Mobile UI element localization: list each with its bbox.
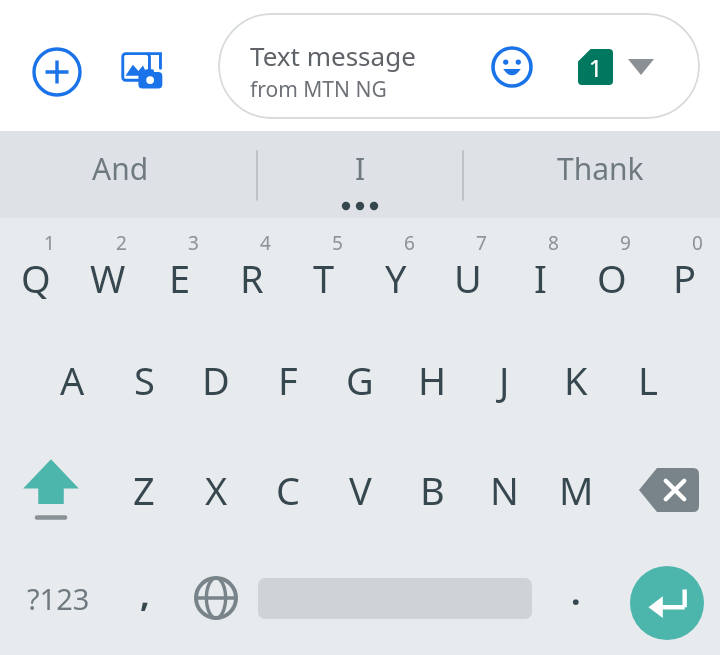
staticText: W bbox=[90, 252, 126, 304]
button[interactable]: Change language bbox=[182, 548, 250, 648]
staticText: K bbox=[564, 354, 588, 406]
staticText: 7 bbox=[476, 230, 487, 256]
button[interactable]: I bbox=[504, 218, 576, 322]
staticText: . bbox=[571, 569, 581, 615]
button[interactable]: C bbox=[252, 440, 324, 540]
button[interactable]: SIM 1 bbox=[570, 41, 670, 93]
button[interactable]: G bbox=[324, 330, 396, 430]
staticText: C bbox=[276, 464, 301, 516]
button[interactable]: O bbox=[576, 218, 648, 322]
button[interactable]: Thank bbox=[480, 131, 720, 218]
button[interactable]: Shift bbox=[8, 440, 94, 540]
staticText: V bbox=[349, 464, 372, 516]
staticText: J bbox=[499, 354, 510, 406]
staticText: Text message bbox=[250, 38, 416, 73]
staticText: O bbox=[597, 252, 627, 304]
button[interactable]: ?123 bbox=[6, 548, 110, 648]
button[interactable]: N bbox=[468, 440, 540, 540]
staticText: 4 bbox=[260, 230, 271, 256]
staticText: 1 bbox=[578, 51, 613, 84]
staticText: T bbox=[313, 252, 335, 304]
staticText: D bbox=[202, 354, 230, 406]
button[interactable]: A bbox=[36, 330, 108, 430]
staticText: N bbox=[490, 464, 519, 516]
staticText: And bbox=[92, 148, 149, 189]
staticText: , bbox=[140, 571, 150, 617]
staticText: 8 bbox=[548, 230, 559, 256]
staticText: U bbox=[454, 252, 482, 304]
button[interactable]: Backspace bbox=[626, 440, 712, 540]
staticText: R bbox=[240, 252, 264, 304]
staticText: I bbox=[355, 148, 366, 189]
button[interactable]: H bbox=[396, 330, 468, 430]
staticText: G bbox=[346, 354, 374, 406]
button[interactable]: D bbox=[180, 330, 252, 430]
button[interactable]: T bbox=[288, 218, 360, 322]
button[interactable]: S bbox=[108, 330, 180, 430]
staticText: F bbox=[278, 354, 298, 406]
button[interactable]: F bbox=[252, 330, 324, 430]
button[interactable]: V bbox=[324, 440, 396, 540]
button[interactable]: Insert emoji bbox=[490, 45, 534, 89]
button[interactable]: Y bbox=[360, 218, 432, 322]
staticText: from MTN NG bbox=[250, 75, 387, 104]
button[interactable]: E bbox=[144, 218, 216, 322]
staticText: 1 bbox=[44, 230, 55, 256]
button[interactable]: , bbox=[110, 548, 180, 648]
button[interactable]: Attach photo bbox=[112, 41, 174, 103]
staticText: Thank bbox=[557, 148, 644, 189]
staticText: ?123 bbox=[27, 579, 90, 618]
staticText: B bbox=[420, 464, 445, 516]
button[interactable]: M bbox=[540, 440, 612, 540]
staticText: I bbox=[534, 252, 547, 304]
button[interactable]: . bbox=[542, 548, 610, 648]
button[interactable]: Enter bbox=[630, 566, 704, 640]
button[interactable]: Q bbox=[0, 218, 72, 322]
staticText: Y bbox=[385, 252, 407, 304]
button[interactable]: X bbox=[180, 440, 252, 540]
staticText: 0 bbox=[692, 230, 703, 256]
staticText: 3 bbox=[188, 230, 199, 256]
staticText: L bbox=[638, 354, 658, 406]
staticText: H bbox=[418, 354, 447, 406]
staticText: P bbox=[673, 252, 696, 304]
button[interactable]: Text message bbox=[218, 13, 700, 119]
button[interactable]: B bbox=[396, 440, 468, 540]
button[interactable]: I bbox=[240, 131, 480, 218]
staticText: Z bbox=[133, 464, 155, 516]
button[interactable]: K bbox=[540, 330, 612, 430]
staticText: M bbox=[559, 464, 594, 516]
button[interactable]: J bbox=[468, 330, 540, 430]
staticText: 2 bbox=[116, 230, 127, 256]
button[interactable]: And bbox=[0, 131, 240, 218]
staticText: A bbox=[60, 354, 85, 406]
button[interactable]: P bbox=[648, 218, 720, 322]
button[interactable]: R bbox=[216, 218, 288, 322]
staticText: S bbox=[134, 354, 155, 406]
staticText: 6 bbox=[404, 230, 415, 256]
button[interactable] bbox=[258, 548, 532, 648]
button[interactable]: W bbox=[72, 218, 144, 322]
staticText: 5 bbox=[332, 230, 343, 256]
button[interactable]: L bbox=[612, 330, 684, 430]
staticText: Q bbox=[21, 252, 51, 304]
staticText: 9 bbox=[620, 230, 631, 256]
button[interactable]: Z bbox=[108, 440, 180, 540]
staticText: E bbox=[169, 252, 191, 304]
button[interactable]: Add attachment bbox=[26, 41, 88, 103]
staticText: X bbox=[205, 464, 228, 516]
button[interactable]: U bbox=[432, 218, 504, 322]
